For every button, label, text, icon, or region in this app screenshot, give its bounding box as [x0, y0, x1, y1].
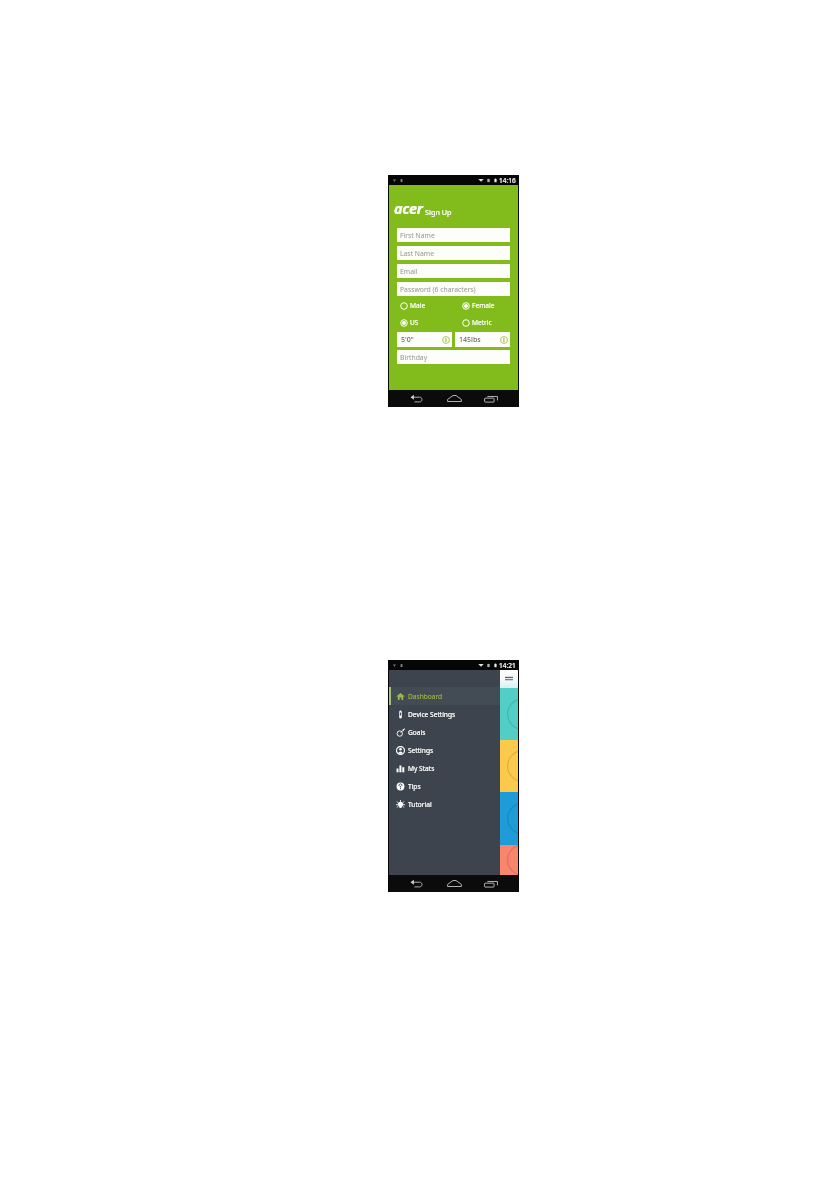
button[interactable]: Female: [457, 297, 510, 314]
staticText: Metric: [472, 318, 492, 327]
staticText: My Stats: [408, 764, 435, 773]
button[interactable]: 145lbs: [455, 332, 510, 347]
button[interactable]: Email: [397, 264, 510, 278]
button[interactable]: Open menu: [500, 670, 518, 688]
button[interactable]: Sleep card: [500, 845, 518, 875]
staticText: Settings: [408, 746, 434, 755]
button[interactable]: Metric: [457, 314, 510, 331]
button[interactable]: Steps card: [500, 688, 518, 740]
button[interactable]: Last Name: [397, 246, 510, 260]
staticText: 5'0": [401, 335, 414, 345]
button[interactable]: First Name: [397, 228, 510, 242]
button[interactable]: Calories card: [500, 740, 518, 792]
button[interactable]: Device Settings: [389, 705, 500, 723]
staticText: Dashboard: [408, 692, 443, 701]
button[interactable]: Settings: [389, 741, 500, 759]
staticText: Goals: [408, 728, 426, 737]
button[interactable]: US: [397, 314, 457, 331]
staticText: Password (6 characters): [400, 285, 476, 294]
staticText: US: [410, 318, 419, 327]
button[interactable]: Tutorial: [389, 795, 500, 813]
staticText: Sign Up: [425, 207, 452, 217]
staticText: First Name: [400, 231, 435, 240]
button[interactable]: Goals: [389, 723, 500, 741]
button[interactable]: Birthday: [397, 350, 510, 364]
staticText: i: [445, 336, 447, 344]
button[interactable]: 5'0": [397, 332, 452, 347]
staticText: Email: [400, 267, 418, 276]
staticText: 14:21: [499, 661, 516, 670]
button[interactable]: Password (6 characters): [397, 282, 510, 296]
staticText: Birthday: [400, 353, 428, 362]
button[interactable]: Recent apps: [481, 390, 501, 407]
button[interactable]: Home: [444, 390, 464, 407]
staticText: Device Settings: [408, 710, 456, 719]
staticText: 14:16: [499, 176, 516, 185]
staticText: Female: [472, 301, 495, 310]
button[interactable]: Back: [406, 390, 426, 407]
staticText: Last Name: [400, 249, 435, 258]
staticText: 145lbs: [459, 335, 481, 345]
button[interactable]: Distance card: [500, 792, 518, 845]
staticText: Tips: [408, 782, 421, 791]
staticText: Male: [410, 301, 426, 310]
button[interactable]: My Stats: [389, 759, 500, 777]
staticText: i: [503, 336, 505, 344]
staticText: Tutorial: [408, 800, 432, 809]
button[interactable]: Male: [397, 297, 457, 314]
button[interactable]: Tips: [389, 777, 500, 795]
button[interactable]: Back: [406, 875, 426, 892]
button[interactable]: Dashboard: [389, 687, 500, 705]
button[interactable]: Home: [444, 875, 464, 892]
staticText: acer: [394, 198, 423, 218]
button[interactable]: Recent apps: [481, 875, 501, 892]
